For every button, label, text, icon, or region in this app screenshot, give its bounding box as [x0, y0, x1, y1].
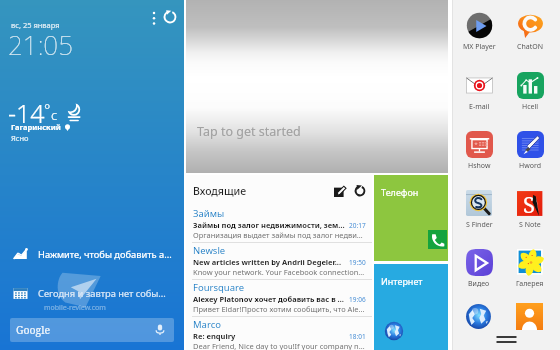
- staticText: MX Player: [463, 42, 496, 52]
- staticText: Телефон: [381, 186, 419, 198]
- button[interactable]: More options: [147, 9, 161, 23]
- button[interactable]: Hword: [506, 131, 554, 181]
- staticText: 21:05: [8, 27, 74, 62]
- button[interactable]: Refresh: [163, 10, 177, 24]
- staticText: Google: [16, 323, 51, 337]
- staticText: -14: [8, 96, 45, 130]
- button[interactable]: S Finder: [455, 190, 503, 240]
- staticText: Займы под залог недвижимости, земли и...: [193, 220, 346, 230]
- button[interactable]: Телефон: [374, 175, 448, 261]
- staticText: 19:06: [349, 295, 366, 304]
- staticText: Ясно: [11, 133, 29, 143]
- staticText: Гагаринский: [11, 122, 61, 132]
- staticText: 19:50: [349, 258, 366, 267]
- staticText: °: [44, 99, 51, 119]
- button[interactable]: Hshow: [455, 131, 503, 181]
- staticText: Нажмите, чтобы добавить а...: [38, 248, 172, 261]
- staticText: Know your network. Your Facebook connect…: [193, 267, 366, 277]
- staticText: E-mail: [469, 102, 490, 112]
- button[interactable]: Нажмите, чтобы добавить а...: [13, 243, 181, 265]
- staticText: Marco: [193, 318, 221, 331]
- staticText: Hword: [519, 161, 541, 171]
- staticText: 18:01: [349, 332, 366, 341]
- button[interactable]: Интернет: [374, 264, 448, 350]
- button[interactable]: Сегодня и завтра нет собы...: [13, 282, 181, 304]
- button[interactable]: Google: [10, 318, 174, 342]
- button[interactable]: Newsle: [186, 243, 372, 280]
- button[interactable]: Займы: [186, 206, 372, 243]
- button[interactable]: Refresh mail: [354, 185, 366, 197]
- staticText: Dear Friend, Nice day to you!If your com…: [193, 341, 366, 350]
- staticText: S Finder: [466, 220, 493, 230]
- staticText: 20:17: [349, 221, 366, 230]
- staticText: Сегодня и завтра нет собы...: [38, 287, 166, 300]
- staticText: Foursquare: [193, 281, 245, 294]
- staticText: вс, 25 января: [11, 20, 60, 30]
- staticText: Привет Eldar!Просто хотим сообщить, что …: [193, 304, 366, 314]
- button[interactable]: Internet: [465, 303, 492, 330]
- button[interactable]: ChatON: [506, 12, 554, 62]
- staticText: New articles written by Andrii Degeler..…: [193, 257, 346, 267]
- button[interactable]: Галерея: [506, 249, 554, 299]
- staticText: c: [51, 106, 58, 124]
- staticText: Займы: [193, 207, 225, 220]
- staticText: Интернет: [381, 275, 423, 287]
- staticText: ChatON: [517, 42, 543, 52]
- staticText: S Note: [519, 220, 541, 230]
- staticText: Входящие: [193, 184, 247, 198]
- staticText: Галерея: [516, 279, 544, 289]
- staticText: Hcell: [522, 102, 539, 112]
- button[interactable]: Compose: [334, 185, 346, 197]
- staticText: mobile-review.com: [44, 303, 106, 313]
- staticText: Re: enquiry: [193, 331, 346, 341]
- staticText: S: [523, 189, 535, 216]
- staticText: Newsle: [193, 244, 226, 257]
- button[interactable]: S: [506, 190, 554, 240]
- button[interactable]: Tap to get started: [186, 0, 448, 173]
- button[interactable]: MX Player: [455, 12, 503, 62]
- button[interactable]: Видео: [455, 249, 503, 299]
- button[interactable]: Marco: [186, 317, 372, 350]
- staticText: Tap to get started: [197, 123, 301, 140]
- button[interactable]: E-mail: [455, 72, 503, 122]
- button[interactable]: Foursquare: [186, 280, 372, 317]
- button[interactable]: Hcell: [506, 72, 554, 122]
- staticText: Alexey Platonov хочет добавить вас в спи…: [193, 294, 346, 304]
- staticText: Hshow: [468, 161, 491, 171]
- staticText: Организация выдает займы под залог недви…: [193, 230, 366, 240]
- staticText: Видео: [468, 279, 490, 289]
- button[interactable]: Contacts: [516, 303, 543, 330]
